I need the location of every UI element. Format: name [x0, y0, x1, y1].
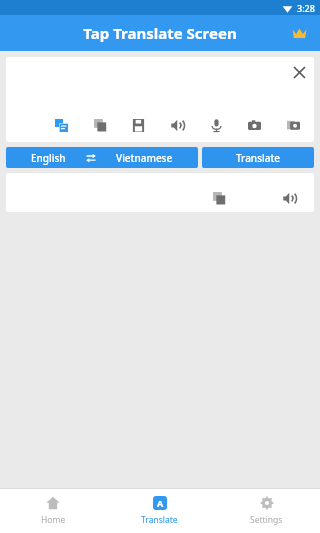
button[interactable]: Translate [202, 147, 314, 168]
button[interactable]: Screenshot [282, 114, 304, 136]
staticText: Settings [250, 514, 283, 526]
staticText: Translate [141, 514, 178, 526]
button[interactable]: Speak [166, 114, 188, 136]
button[interactable]: Speak result [278, 187, 300, 209]
staticText: 3:28 [297, 2, 315, 14]
button[interactable]: Settings [213, 489, 320, 533]
button[interactable]: Premium [284, 18, 314, 48]
button[interactable]: Copy [89, 114, 111, 136]
button[interactable]: Save [127, 114, 149, 136]
staticText: Tap Translate Screen [83, 23, 237, 43]
staticText: A [157, 497, 164, 509]
staticText: Translate [236, 151, 280, 165]
staticText: Vietnamese [116, 151, 173, 165]
button[interactable]: English [6, 147, 198, 168]
button[interactable]: Close [284, 57, 314, 87]
button[interactable]: Home [0, 489, 106, 533]
staticText: English [31, 151, 66, 165]
button[interactable]: Voice input [205, 114, 227, 136]
button[interactable]: A [106, 489, 213, 533]
button[interactable]: Camera [243, 114, 265, 136]
button[interactable]: Copy result [208, 187, 230, 209]
button[interactable]: Translate text [50, 114, 72, 136]
staticText: Home [41, 514, 66, 526]
